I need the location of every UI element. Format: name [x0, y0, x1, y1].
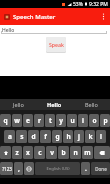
- staticText: p: [103, 116, 108, 125]
- button[interactable]: Change keyboard: [24, 162, 34, 175]
- staticText: w: [14, 116, 20, 125]
- staticText: ?123: [2, 166, 12, 172]
- staticText: u: [70, 116, 75, 125]
- button[interactable]: s: [16, 130, 27, 143]
- staticText: j: [78, 132, 80, 141]
- button[interactable]: v: [46, 146, 57, 159]
- button[interactable]: z: [12, 146, 22, 159]
- staticText: v: [50, 148, 54, 157]
- staticText: l: [100, 132, 102, 141]
- button[interactable]: a: [4, 130, 15, 143]
- button[interactable]: i: [78, 114, 88, 127]
- staticText: a: [8, 132, 12, 141]
- button[interactable]: Jello: [0, 99, 36, 110]
- button[interactable]: ,: [14, 162, 23, 175]
- button[interactable]: c: [34, 146, 45, 159]
- button[interactable]: Bello: [73, 99, 110, 110]
- button[interactable]: f: [40, 130, 51, 143]
- staticText: d: [31, 132, 36, 141]
- staticText: q: [3, 116, 8, 125]
- staticText: e: [26, 116, 30, 125]
- button[interactable]: y: [56, 114, 66, 127]
- staticText: Speech Master: [13, 13, 56, 21]
- staticText: n: [73, 148, 78, 157]
- staticText: Hello: [2, 27, 15, 34]
- staticText: .: [85, 164, 87, 173]
- staticText: Jello: [13, 101, 24, 108]
- staticText: g: [55, 132, 60, 141]
- staticText: s: [20, 132, 24, 141]
- button[interactable]: q: [0, 114, 11, 127]
- staticText: English (US): [46, 166, 70, 172]
- button[interactable]: w: [12, 114, 22, 127]
- staticText: t: [49, 116, 52, 125]
- staticText: ,: [18, 164, 20, 173]
- staticText: Done: [95, 166, 107, 172]
- button[interactable]: x: [23, 146, 33, 159]
- button[interactable]: b: [58, 146, 69, 159]
- button[interactable]: g: [52, 130, 62, 143]
- button[interactable]: e: [23, 114, 33, 127]
- staticText: c: [38, 148, 42, 157]
- button[interactable]: h: [63, 130, 73, 143]
- button[interactable]: p: [100, 114, 110, 127]
- staticText: h: [66, 132, 71, 141]
- staticText: Bello: [85, 101, 98, 108]
- button[interactable]: j: [74, 130, 84, 143]
- staticText: z: [15, 148, 19, 157]
- staticText: 53%: [73, 1, 83, 8]
- button[interactable]: Shift: [0, 146, 11, 159]
- button[interactable]: Hello: [36, 99, 73, 110]
- button[interactable]: Speak: [46, 37, 66, 52]
- staticText: f: [44, 132, 47, 141]
- button[interactable]: .: [81, 162, 90, 175]
- button[interactable]: u: [67, 114, 77, 127]
- button[interactable]: ?123: [0, 162, 13, 175]
- button[interactable]: m: [82, 146, 93, 159]
- staticText: k: [88, 132, 93, 141]
- staticText: Hello: [47, 101, 62, 108]
- staticText: Speak: [49, 41, 64, 48]
- staticText: y: [59, 116, 63, 125]
- staticText: x: [26, 148, 30, 157]
- staticText: i: [82, 116, 84, 125]
- button[interactable]: t: [45, 114, 55, 127]
- staticText: b: [61, 148, 66, 157]
- button[interactable]: r: [34, 114, 44, 127]
- staticText: m: [84, 148, 91, 157]
- staticText: o: [92, 116, 97, 125]
- button[interactable]: d: [28, 130, 39, 143]
- button[interactable]: l: [96, 130, 106, 143]
- staticText: 9:32 PM: [89, 1, 108, 8]
- button[interactable]: o: [89, 114, 99, 127]
- button[interactable]: More options: [98, 11, 109, 22]
- button[interactable]: Backspace: [94, 146, 110, 159]
- button[interactable]: k: [85, 130, 95, 143]
- staticText: r: [38, 116, 41, 125]
- button[interactable]: Done: [91, 162, 110, 175]
- button[interactable]: n: [70, 146, 81, 159]
- button[interactable]: English (US): [35, 162, 80, 175]
